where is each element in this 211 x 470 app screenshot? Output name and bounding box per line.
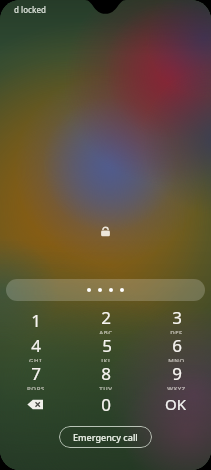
staticText: OK xyxy=(165,394,187,414)
button[interactable]: 0 xyxy=(71,390,141,418)
staticText: WXYZ xyxy=(167,385,186,390)
button[interactable]: 6 xyxy=(141,334,211,362)
staticText: JKL xyxy=(101,357,112,362)
button[interactable]: 1 xyxy=(0,306,71,334)
staticText: PQRS xyxy=(27,385,45,390)
button[interactable]: 3 xyxy=(141,306,211,334)
staticText: MNO xyxy=(168,357,185,362)
staticText: d locked xyxy=(14,4,47,15)
staticText: 7 xyxy=(31,362,41,385)
staticText: ABC xyxy=(99,329,113,334)
button[interactable]: 5 xyxy=(71,334,141,362)
button[interactable]: 7 xyxy=(0,362,71,390)
button[interactable]: 4 xyxy=(0,334,71,362)
staticText: 3 xyxy=(172,306,182,329)
button[interactable]: OK xyxy=(141,390,211,418)
staticText: 8 xyxy=(101,362,111,385)
button[interactable]: PIN entry xyxy=(6,279,205,301)
button[interactable]: Emergency call xyxy=(59,426,152,448)
staticText: DEF xyxy=(170,329,183,334)
staticText: 5 xyxy=(102,334,112,357)
staticText: 4 xyxy=(31,334,41,357)
staticText: Emergency call xyxy=(73,431,138,443)
staticText: 2 xyxy=(101,306,111,329)
button[interactable]: 9 xyxy=(141,362,211,390)
staticText: 9 xyxy=(172,362,182,385)
button[interactable]: Delete xyxy=(0,390,71,418)
staticText: 6 xyxy=(172,334,182,357)
button[interactable]: 8 xyxy=(71,362,141,390)
staticText: GHI xyxy=(29,357,42,362)
staticText: TUV xyxy=(99,385,113,390)
staticText: 0 xyxy=(101,393,111,416)
button[interactable]: 2 xyxy=(71,306,141,334)
staticText: 1 xyxy=(31,309,41,332)
